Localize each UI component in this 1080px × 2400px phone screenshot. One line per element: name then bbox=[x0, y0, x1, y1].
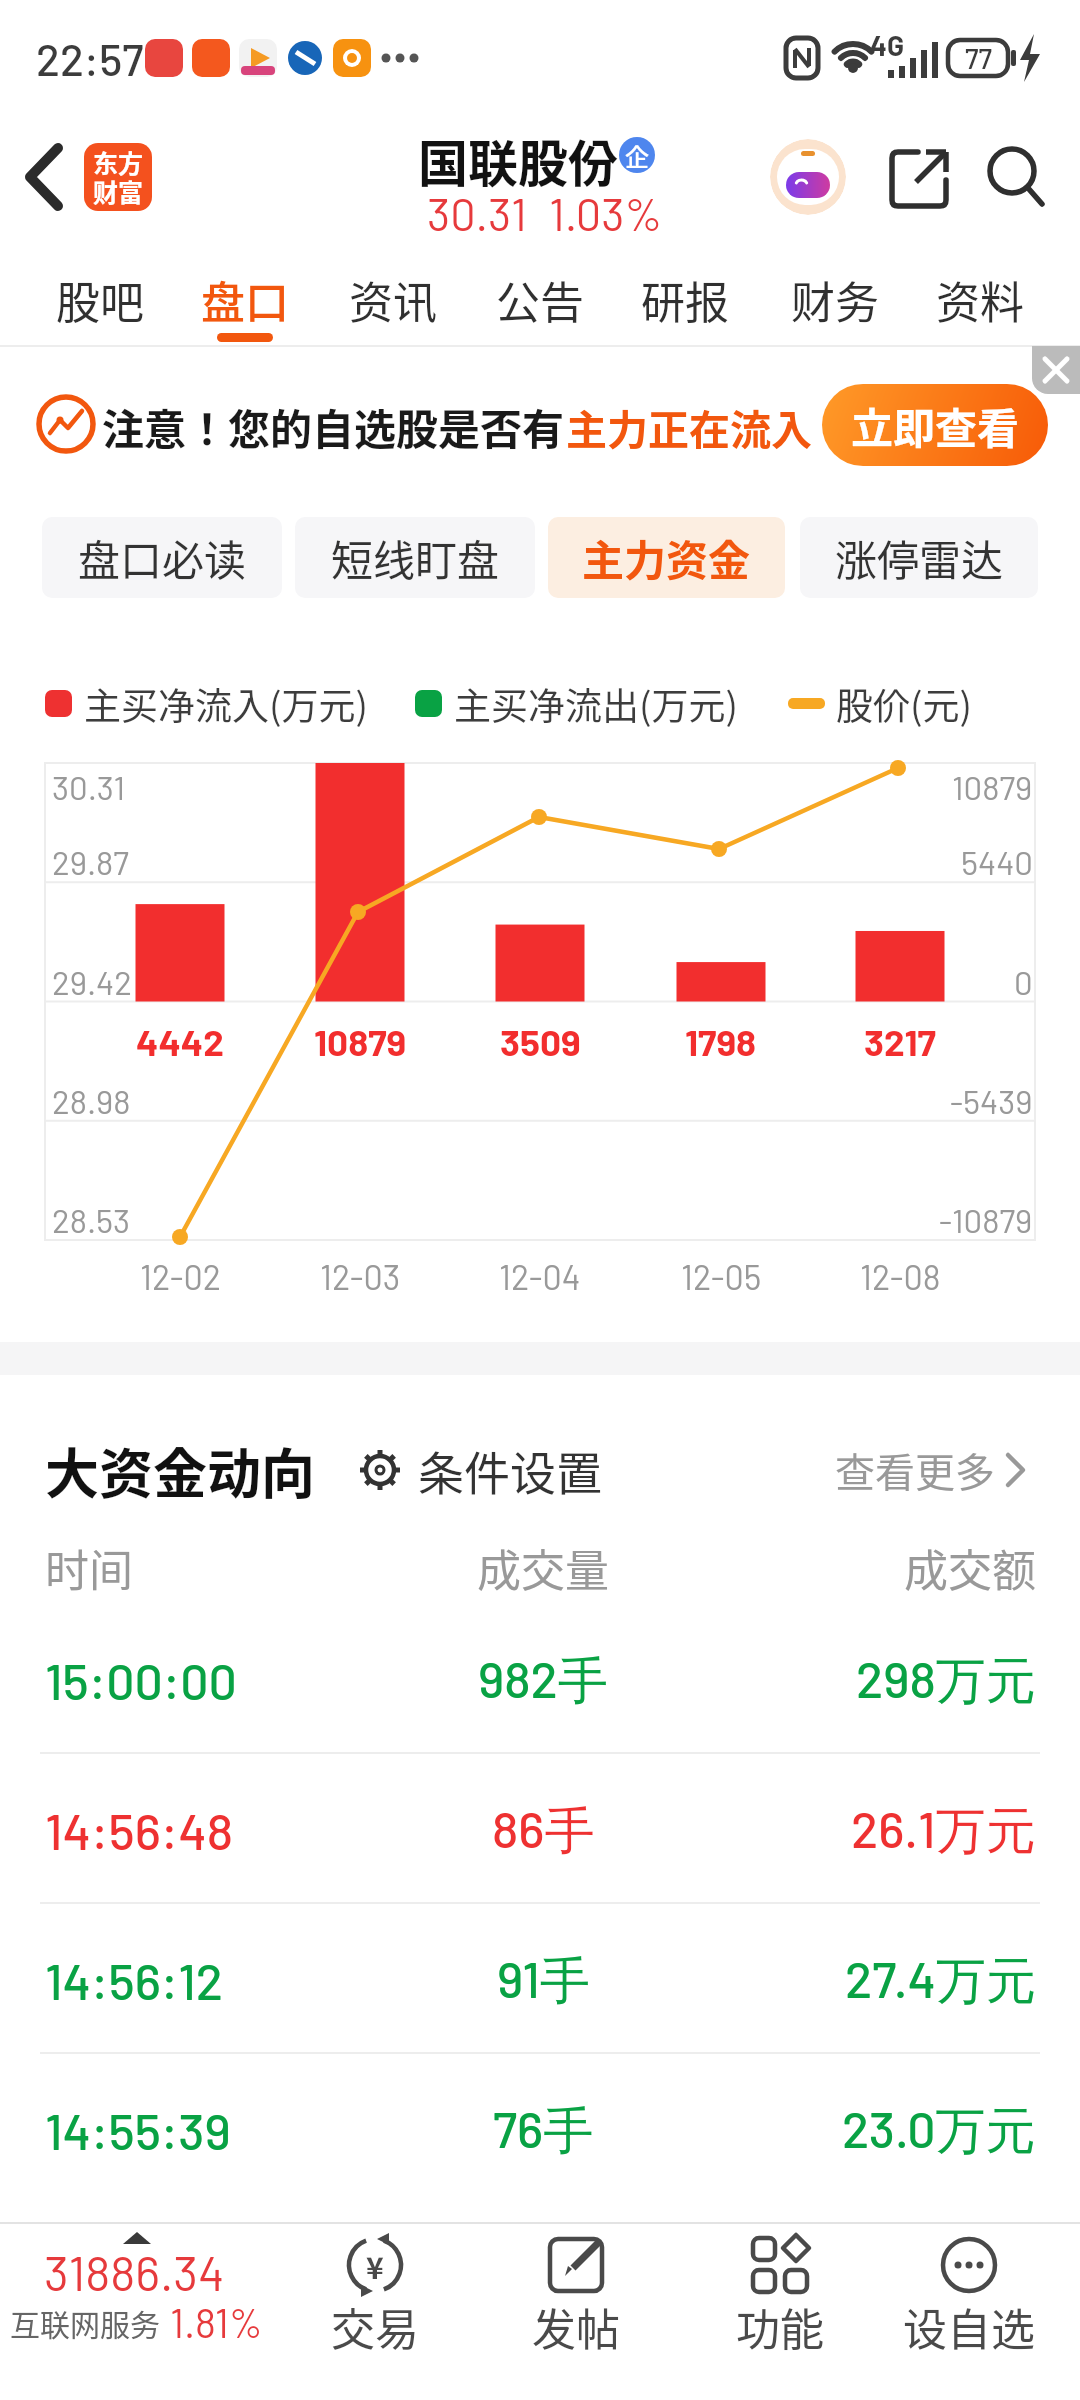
staticText: 1.03% bbox=[549, 186, 663, 240]
button[interactable]: 盘口必读 bbox=[42, 517, 282, 598]
staticText: 4442 bbox=[136, 1019, 224, 1063]
staticText: 10879 bbox=[952, 767, 1033, 807]
staticText: 股价(元) bbox=[836, 677, 973, 731]
staticText: 设自选 bbox=[903, 2295, 1035, 2359]
button[interactable] bbox=[491, 2226, 661, 2396]
staticText: 5440 bbox=[961, 842, 1033, 882]
staticText: 立即查看 bbox=[851, 395, 1020, 456]
staticText: 大资金动向 bbox=[45, 1431, 315, 1509]
button[interactable]: 资讯 bbox=[331, 255, 455, 345]
button[interactable]: 立即查看 bbox=[822, 384, 1048, 466]
button[interactable]: 公告 bbox=[478, 255, 602, 345]
staticText: 涨停雷达 bbox=[835, 527, 1004, 588]
staticText: 主买净流出(万元) bbox=[454, 677, 739, 731]
button[interactable] bbox=[0, 1606, 1080, 1754]
staticText: 0 bbox=[1014, 962, 1033, 1002]
button[interactable] bbox=[10, 130, 80, 225]
staticText: 31886.34 bbox=[44, 2243, 225, 2301]
staticText: 3217 bbox=[864, 1019, 936, 1063]
staticText: 12-02 bbox=[140, 1256, 221, 1297]
staticText: 14:56:48 bbox=[45, 1800, 234, 1860]
button[interactable] bbox=[820, 1430, 1040, 1510]
staticText: 982手 bbox=[478, 1648, 608, 1713]
button[interactable]: 涨停雷达 bbox=[800, 517, 1038, 598]
staticText: 公告 bbox=[496, 268, 584, 332]
button[interactable] bbox=[340, 1430, 600, 1510]
staticText: 企 bbox=[625, 138, 649, 173]
staticText: 14:55:39 bbox=[45, 2100, 231, 2160]
staticText: 30.31 bbox=[52, 767, 126, 807]
button[interactable] bbox=[878, 138, 958, 218]
staticText: 功能 bbox=[736, 2295, 824, 2359]
staticText: 短线盯盘 bbox=[331, 527, 500, 588]
staticText: 28.53 bbox=[52, 1200, 131, 1240]
button[interactable]: 盘口 bbox=[183, 255, 307, 345]
staticText: 研报 bbox=[641, 268, 729, 332]
staticText: -10879 bbox=[939, 1200, 1033, 1240]
staticText: 时间 bbox=[45, 1536, 133, 1600]
button[interactable]: 短线盯盘 bbox=[295, 517, 535, 598]
staticText: 查看更多 bbox=[835, 1441, 995, 1499]
staticText: 国联股份 bbox=[418, 124, 618, 196]
button[interactable] bbox=[0, 2056, 1080, 2204]
staticText: 77 bbox=[965, 41, 992, 75]
staticText: 12-05 bbox=[681, 1256, 762, 1297]
staticText: 22:57 bbox=[36, 32, 144, 85]
staticText: 3509 bbox=[500, 1019, 581, 1063]
button[interactable] bbox=[1032, 346, 1080, 394]
staticText: 91手 bbox=[497, 1948, 590, 2013]
staticText: ¥ bbox=[366, 2244, 384, 2287]
button[interactable] bbox=[884, 2226, 1054, 2396]
staticText: 29.42 bbox=[52, 962, 132, 1002]
staticText: 成交额 bbox=[904, 1536, 1036, 1600]
staticText: 27.4万元 bbox=[845, 1948, 1036, 2013]
staticText: 资料 bbox=[936, 268, 1024, 332]
button[interactable]: 股吧 bbox=[38, 255, 162, 345]
staticText: 1798 bbox=[685, 1019, 757, 1063]
button[interactable] bbox=[0, 2224, 290, 2400]
staticText: 条件设置 bbox=[418, 1437, 602, 1504]
staticText: 86手 bbox=[492, 1798, 595, 1863]
staticText: 12-04 bbox=[499, 1256, 581, 1297]
button[interactable]: 研报 bbox=[623, 255, 747, 345]
staticText: 盘口 bbox=[201, 268, 289, 332]
staticText: 30.31 bbox=[427, 186, 527, 240]
staticText: 4G bbox=[870, 28, 905, 62]
staticText: 财务 bbox=[791, 268, 879, 332]
staticText: 26.1万元 bbox=[851, 1798, 1036, 1863]
staticText: 成交量 bbox=[477, 1536, 609, 1600]
button[interactable]: 资料 bbox=[918, 255, 1042, 345]
staticText: 14:56:12 bbox=[45, 1950, 223, 2010]
staticText: 1.81% bbox=[170, 2298, 263, 2346]
staticText: 15:00:00 bbox=[45, 1650, 237, 1710]
staticText: 盘口必读 bbox=[78, 527, 247, 588]
staticText: 76手 bbox=[493, 2098, 594, 2163]
button[interactable] bbox=[0, 1756, 1080, 1904]
staticText: 12-03 bbox=[320, 1256, 401, 1297]
staticText: 财富 bbox=[93, 173, 144, 209]
staticText: 298万元 bbox=[856, 1648, 1036, 1713]
staticText: 10879 bbox=[314, 1019, 407, 1063]
staticText: 主买净流入(万元) bbox=[84, 677, 369, 731]
staticText: 28.98 bbox=[52, 1081, 131, 1121]
staticText: 互联网服务 bbox=[10, 2301, 160, 2344]
staticText: 23.0万元 bbox=[842, 2098, 1036, 2163]
staticText: 29.87 bbox=[52, 842, 129, 882]
staticText: 发帖 bbox=[532, 2295, 620, 2359]
button[interactable] bbox=[84, 143, 152, 211]
staticText: 注意！您的自选股是否有 bbox=[102, 396, 565, 457]
staticText: 东方 bbox=[93, 144, 144, 180]
button[interactable] bbox=[0, 1906, 1080, 2054]
button[interactable] bbox=[290, 2226, 460, 2396]
button[interactable] bbox=[695, 2226, 865, 2396]
staticText: -5439 bbox=[950, 1081, 1033, 1121]
staticText: 12-08 bbox=[860, 1256, 941, 1297]
staticText: 资讯 bbox=[349, 268, 437, 332]
button[interactable] bbox=[978, 138, 1058, 218]
staticText: 交易 bbox=[331, 2295, 419, 2359]
button[interactable]: 主力资金 bbox=[548, 517, 785, 598]
button[interactable] bbox=[770, 139, 846, 215]
staticText: 主力资金 bbox=[582, 527, 751, 588]
staticText: 主力正在流入 bbox=[566, 397, 812, 456]
button[interactable]: 财务 bbox=[773, 255, 897, 345]
